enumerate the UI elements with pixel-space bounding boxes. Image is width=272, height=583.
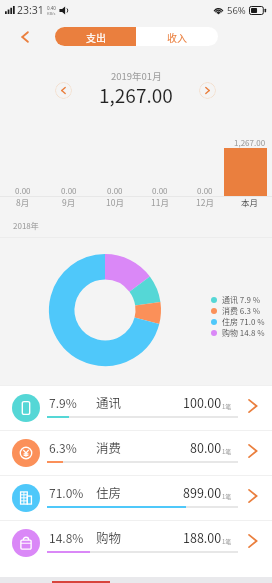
- button[interactable]: 收入: [136, 27, 218, 46]
- staticText: 0.40: [47, 5, 56, 11]
- staticText: 9月: [62, 196, 76, 208]
- button[interactable]: 6.3%: [0, 430, 272, 475]
- staticText: 56%: [227, 4, 246, 17]
- staticText: 1笔: [222, 402, 232, 411]
- staticText: 住房 71.0 %: [222, 316, 265, 327]
- staticText: 0.00: [197, 185, 213, 197]
- staticText: 12月: [196, 196, 214, 208]
- staticText: 2019年01月: [111, 69, 162, 83]
- staticText: 通讯: [96, 393, 122, 411]
- staticText: 购物: [96, 528, 122, 546]
- staticText: 100.00: [183, 393, 222, 411]
- staticText: 899.00: [183, 483, 222, 501]
- staticText: 6.3%: [49, 439, 77, 456]
- button[interactable]: 7.9%: [0, 385, 272, 430]
- staticText: 1,267.00: [99, 81, 173, 109]
- staticText: 本月: [241, 196, 259, 208]
- button[interactable]: 支出: [55, 27, 136, 46]
- staticText: 10月: [106, 196, 124, 208]
- staticText: 1笔: [222, 492, 232, 501]
- staticText: 支出: [86, 30, 106, 44]
- button[interactable]: Next month: [199, 82, 216, 99]
- staticText: KB/s: [47, 11, 56, 16]
- staticText: 购物 14.8 %: [222, 327, 265, 338]
- staticText: 通讯 7.9 %: [222, 294, 261, 305]
- staticText: 1笔: [222, 447, 232, 456]
- staticText: 11月: [151, 196, 169, 208]
- button[interactable]: 71.0%: [0, 475, 272, 520]
- button[interactable]: 14.8%: [0, 520, 272, 565]
- staticText: 消费 6.3 %: [222, 305, 261, 316]
- button[interactable]: Back: [13, 25, 37, 49]
- staticText: 14.8%: [49, 529, 84, 546]
- staticText: 收入: [167, 30, 187, 44]
- button[interactable]: Previous month: [55, 82, 72, 99]
- staticText: 2018年: [13, 220, 39, 232]
- staticText: 23:31: [17, 3, 44, 17]
- staticText: 80.00: [190, 438, 222, 456]
- staticText: 0.00: [61, 185, 77, 197]
- staticText: 0.00: [152, 185, 168, 197]
- staticText: 住房: [96, 483, 122, 501]
- staticText: 7.9%: [49, 394, 77, 411]
- staticText: 1,267.00: [234, 137, 266, 149]
- staticText: 1笔: [222, 537, 232, 546]
- staticText: 8月: [16, 196, 30, 208]
- staticText: 188.00: [183, 528, 222, 546]
- staticText: 0.00: [107, 185, 123, 197]
- staticText: 71.0%: [49, 484, 84, 501]
- staticText: 消费: [96, 438, 122, 456]
- staticText: 0.00: [15, 185, 31, 197]
